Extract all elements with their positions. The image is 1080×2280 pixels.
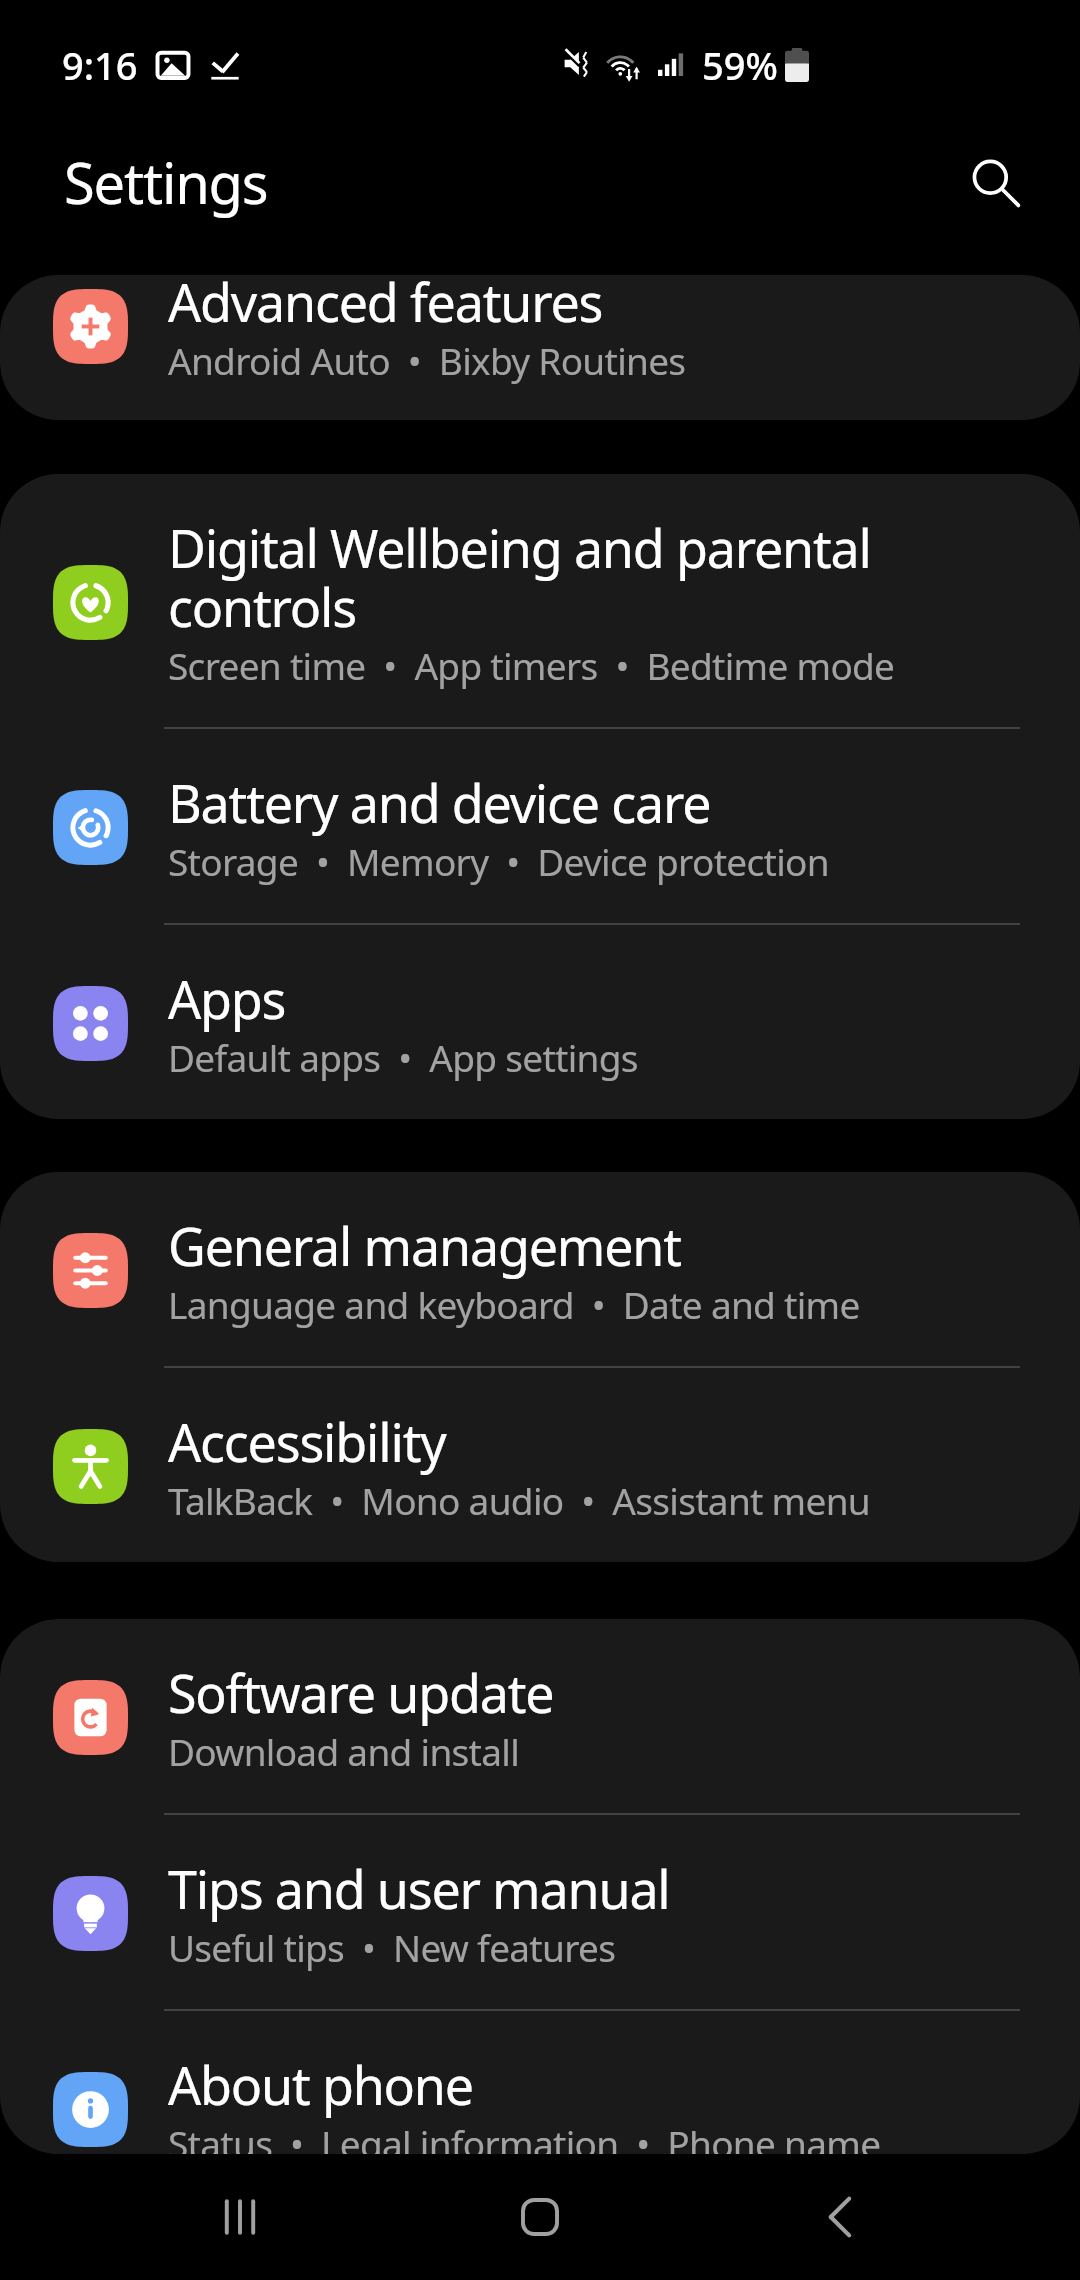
staticText: Language and keyboard • Date and time [168,1279,860,1329]
button[interactable]: General management [0,1172,1080,1366]
staticText: Battery and device care [168,767,711,838]
staticText: Useful tips • New features [168,1922,616,1972]
staticText: 9:16 [62,39,138,91]
button[interactable]: Recents [180,2157,300,2277]
button[interactable]: Apps [0,925,1080,1119]
staticText: Digital Wellbeing and parental controls [168,512,1024,642]
staticText: About phone [168,2049,473,2120]
staticText: Apps [168,963,286,1034]
button[interactable]: About phone [0,2011,1080,2154]
staticText: Status • Legal information • Phone name [168,2118,881,2154]
staticText: Storage • Memory • Device protection [168,836,829,886]
staticText: Default apps • App settings [168,1032,638,1082]
staticText: General management [168,1210,681,1281]
button[interactable]: Search [949,136,1041,228]
staticText: Settings [64,144,268,220]
button[interactable]: Advanced features [0,275,1080,420]
staticText: Accessibility [168,1406,446,1477]
staticText: Tips and user manual [168,1853,670,1924]
button[interactable]: Tips and user manual [0,1815,1080,2009]
staticText: 59% [702,39,778,91]
staticText: Download and install [168,1726,520,1776]
button[interactable]: Software update [0,1619,1080,1813]
staticText: TalkBack • Mono audio • Assistant menu [168,1475,871,1525]
button[interactable]: Accessibility [0,1368,1080,1562]
staticText: Advanced features [168,275,603,337]
staticText: Screen time • App timers • Bedtime mode [168,640,895,690]
button[interactable]: Battery and device care [0,729,1080,923]
staticText: Android Auto • Bixby Routines [168,335,686,385]
button[interactable]: Digital Wellbeing and parental controls [0,474,1080,727]
button[interactable]: Home [480,2157,600,2277]
staticText: Software update [168,1657,554,1728]
button[interactable]: Back [780,2157,900,2277]
